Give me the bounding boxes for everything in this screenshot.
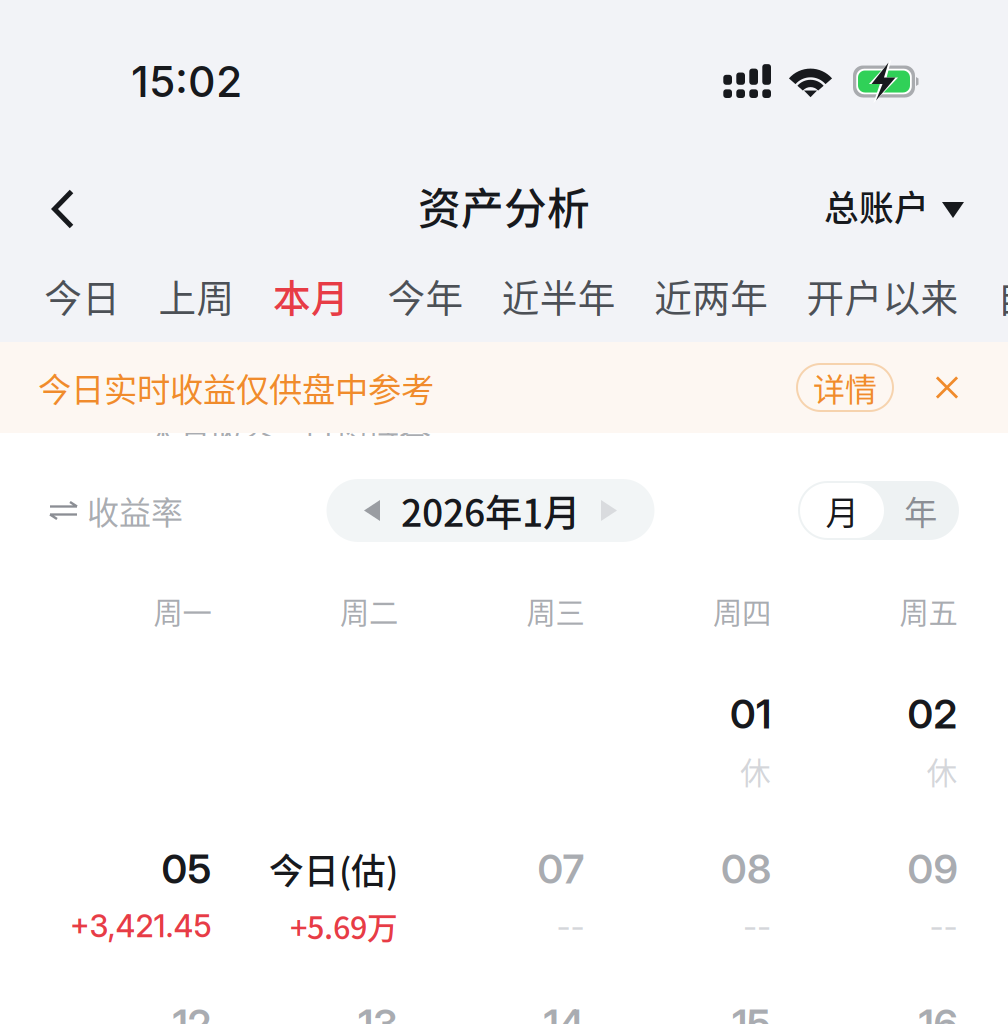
button[interactable]: 今日	[25, 249, 139, 342]
button[interactable]: 08	[584, 850, 771, 943]
staticText: 自	[997, 268, 1008, 323]
staticText: --	[929, 907, 957, 945]
staticText: 13	[358, 1000, 398, 1024]
button[interactable]: 07	[398, 850, 584, 943]
staticText: 近半年	[502, 268, 616, 323]
staticText: 年	[904, 486, 937, 535]
staticText: +5.69万	[290, 904, 398, 948]
button[interactable]: 01	[584, 695, 771, 788]
button[interactable]: 自	[978, 249, 1008, 342]
staticText: 今年	[387, 268, 463, 323]
button[interactable]: 开户以来	[787, 249, 978, 342]
button[interactable]: 02	[771, 695, 957, 788]
staticText: 02	[907, 690, 957, 738]
staticText: 16	[918, 1000, 957, 1024]
staticText: 总账户	[824, 181, 929, 231]
staticText: 08	[721, 845, 771, 893]
button[interactable]: 13	[211, 1005, 398, 1024]
button[interactable]: 本月	[254, 249, 368, 342]
button[interactable]: 今日(估)	[211, 850, 398, 943]
staticText: 休	[926, 749, 957, 793]
staticText: --	[556, 907, 584, 945]
button[interactable]: 近半年	[483, 249, 635, 342]
staticText: 休	[740, 749, 771, 793]
staticText: 今日(估)	[269, 844, 398, 894]
staticText: 周五	[899, 590, 957, 632]
staticText: 近两年	[654, 268, 768, 323]
staticText: 周三	[526, 590, 584, 632]
staticText: 开户以来	[807, 268, 959, 323]
button[interactable]: 收益率	[50, 479, 183, 542]
staticText: 14	[543, 1000, 584, 1024]
button[interactable]: 16	[771, 1005, 957, 1024]
button[interactable]: 14	[398, 1005, 584, 1024]
staticText: 2026年1月	[401, 483, 580, 538]
button[interactable]: 月	[800, 483, 884, 538]
staticText: 周二	[340, 590, 398, 632]
button[interactable]: 近两年	[635, 249, 787, 342]
button[interactable]: 关闭	[919, 359, 975, 415]
staticText: 资产分析	[418, 175, 590, 237]
staticText: 本月	[273, 268, 349, 323]
button[interactable]: 12	[25, 1005, 211, 1024]
staticText: 05	[161, 845, 211, 893]
button[interactable]: 05	[25, 850, 211, 943]
button[interactable]: 详情	[797, 364, 893, 411]
button[interactable]: 返回	[21, 162, 105, 250]
staticText: 01	[730, 690, 771, 738]
staticText: --	[743, 907, 771, 945]
button[interactable]: 上周	[139, 249, 254, 342]
button[interactable]: 2026年1月	[326, 479, 654, 542]
button[interactable]: 年	[884, 483, 957, 538]
staticText: 详情	[813, 364, 877, 411]
button[interactable]: 总账户	[816, 162, 972, 250]
staticText: 15	[732, 1000, 771, 1024]
button[interactable]: 15	[584, 1005, 771, 1024]
staticText: 月	[825, 486, 858, 535]
staticText: 本月收益 日均持仓	[147, 412, 431, 459]
staticText: 12	[172, 1000, 211, 1024]
staticText: +3,421.45	[69, 907, 211, 944]
staticText: 09	[907, 845, 957, 893]
button[interactable]: 09	[771, 850, 957, 943]
staticText: 收益率	[87, 487, 183, 534]
staticText: 周一	[153, 590, 211, 632]
staticText: 今日实时收益仅供盘中参考	[38, 363, 434, 412]
staticText: 今日	[44, 268, 120, 323]
staticText: 周四	[713, 590, 771, 632]
staticText: 07	[537, 845, 584, 893]
button[interactable]: 今年	[368, 249, 483, 342]
staticText: 15:02	[131, 56, 242, 107]
staticText: 上周	[159, 268, 235, 323]
